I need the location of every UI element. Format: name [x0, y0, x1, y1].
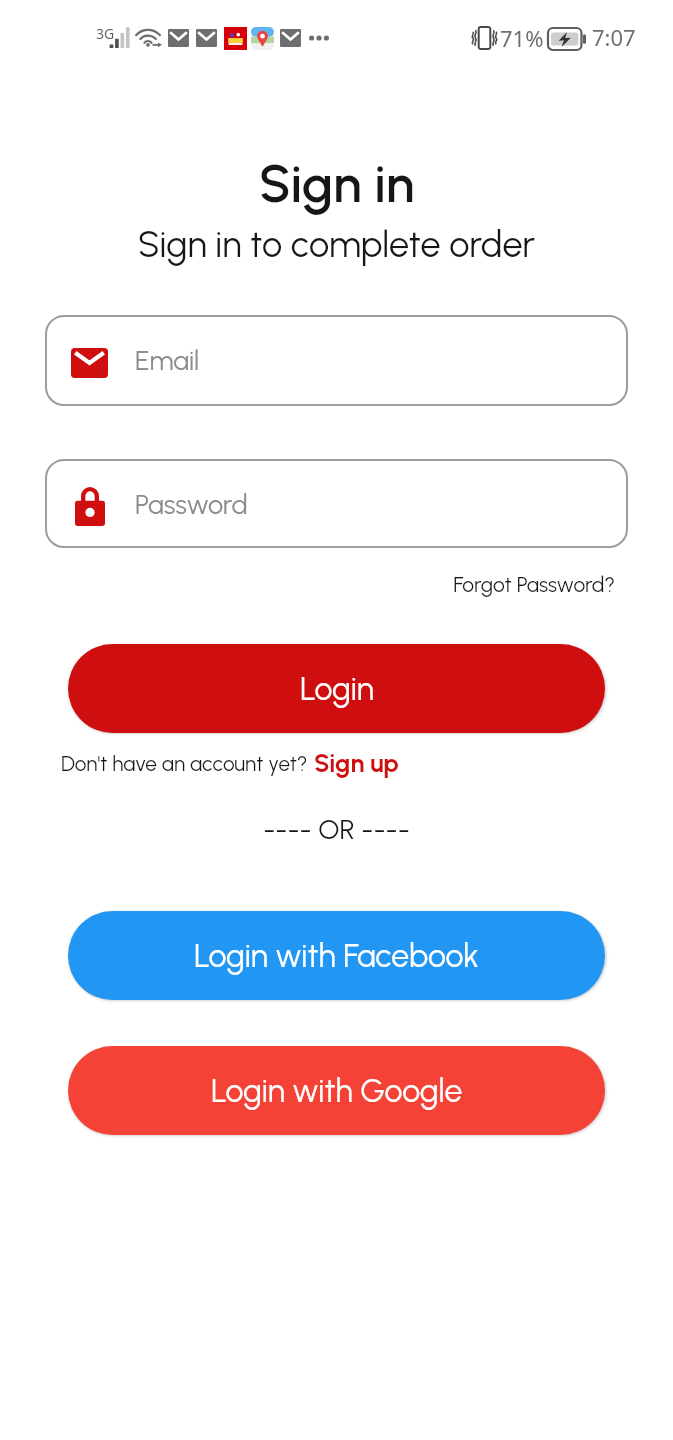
staticText: Email [135, 344, 200, 376]
staticText: Don't have an account yet? [61, 751, 308, 776]
staticText: Sign up [314, 748, 399, 778]
button[interactable]: Sign up [310, 744, 402, 782]
button[interactable]: Login [68, 644, 605, 733]
staticText: Forgot Password? [453, 572, 615, 597]
staticText: 71% [500, 23, 544, 53]
staticText: 3G [96, 24, 115, 43]
staticText: Sign in to complete order [0, 223, 673, 266]
button[interactable]: Email [45, 315, 628, 406]
staticText: 7:07 [592, 22, 636, 52]
other: Password [75, 487, 105, 526]
staticText: Login with Facebook [194, 937, 479, 975]
button[interactable]: Forgot Password? [447, 566, 620, 602]
button[interactable]: Password [45, 459, 628, 548]
button[interactable]: Login with Google [68, 1046, 605, 1135]
staticText: Login with Google [211, 1072, 463, 1110]
staticText: Login [300, 670, 374, 708]
button[interactable]: Login with Facebook [68, 911, 605, 1000]
staticText: Password [135, 488, 248, 520]
other: Email [71, 348, 108, 378]
staticText: Sign in [0, 153, 673, 215]
staticText: ---- OR ---- [0, 813, 673, 846]
